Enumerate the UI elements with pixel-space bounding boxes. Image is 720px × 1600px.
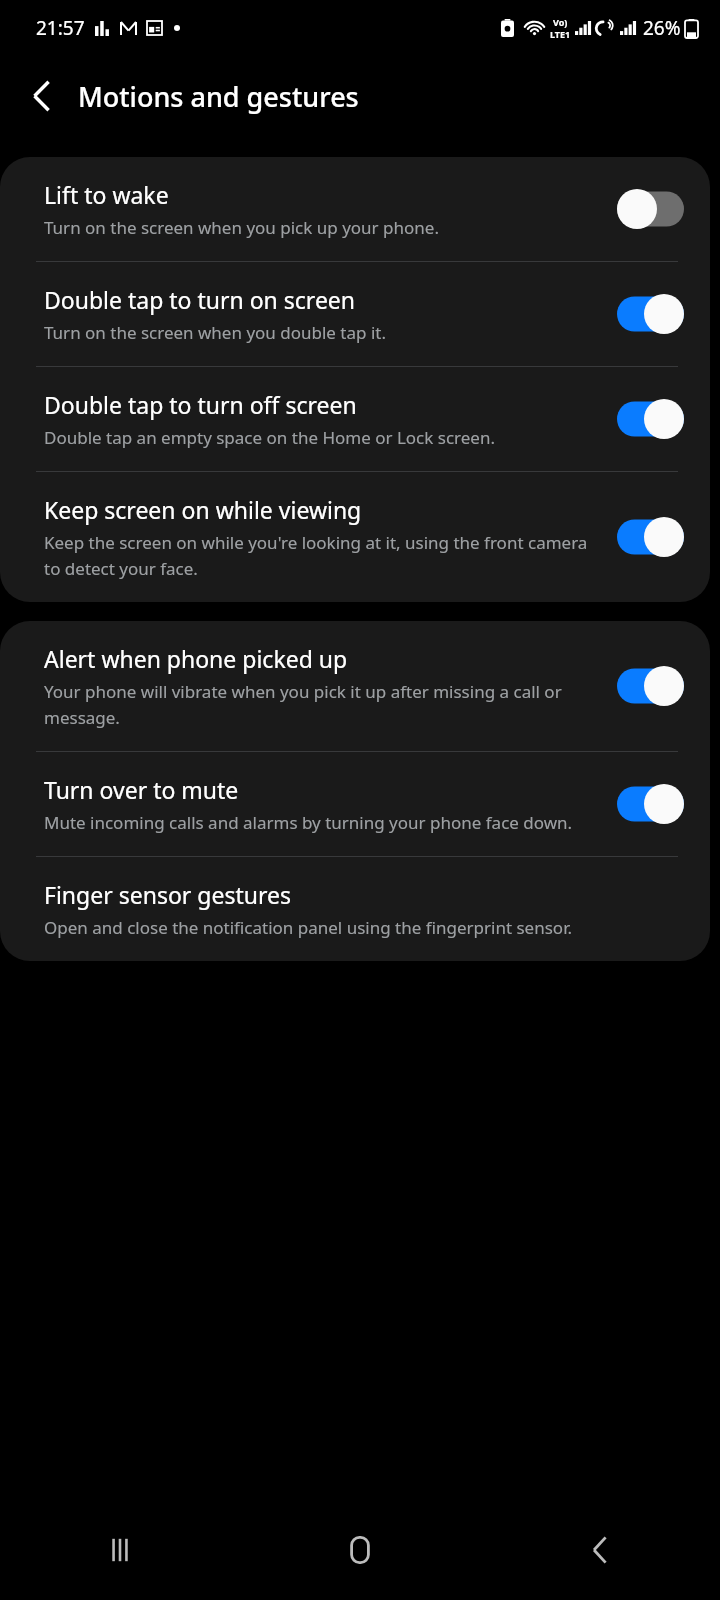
button[interactable]: Home (240, 1500, 480, 1600)
button[interactable]: Keep screen on while viewing (0, 472, 710, 602)
staticText: LTE1 (550, 28, 571, 40)
staticText: Lift to wake (44, 179, 169, 210)
button[interactable]: Lift to wake (0, 157, 710, 261)
button[interactable]: Switch on (614, 782, 686, 826)
staticText: Finger sensor gestures (44, 879, 291, 910)
staticText: Mute incoming calls and alarms by turnin… (44, 811, 573, 834)
button[interactable]: Finger sensor gestures (0, 857, 710, 961)
staticText: Turn on the screen when you double tap i… (44, 321, 386, 344)
button[interactable]: Alert when phone picked up (0, 621, 710, 751)
staticText: Keep the screen on while you're looking … (44, 531, 602, 580)
button[interactable]: Recents (0, 1500, 240, 1600)
staticText: Double tap an empty space on the Home or… (44, 426, 495, 449)
button[interactable]: Navigate up (14, 68, 70, 124)
button[interactable]: Back (480, 1500, 720, 1600)
button[interactable]: Switch on (614, 515, 686, 559)
staticText: Your phone will vibrate when you pick it… (44, 680, 602, 729)
staticText: Open and close the notification panel us… (44, 916, 572, 939)
button[interactable]: Switch on (614, 397, 686, 441)
staticText: Keep screen on while viewing (44, 494, 362, 525)
staticText: 21:57 (36, 15, 85, 41)
button[interactable]: Switch off (614, 187, 686, 231)
staticText: Vo) (553, 16, 568, 28)
staticText: Alert when phone picked up (44, 643, 348, 674)
button[interactable]: Double tap to turn on screen (0, 262, 710, 366)
staticText: Turn over to mute (44, 774, 239, 805)
button[interactable]: Double tap to turn off screen (0, 367, 710, 471)
button[interactable]: Switch on (614, 292, 686, 336)
button[interactable]: Switch on (614, 664, 686, 708)
staticText: Turn on the screen when you pick up your… (44, 216, 439, 239)
staticText: Motions and gestures (78, 78, 359, 115)
staticText: Double tap to turn on screen (44, 284, 356, 315)
staticText: 26% (643, 15, 681, 41)
staticText: Double tap to turn off screen (44, 389, 357, 420)
button[interactable]: Turn over to mute (0, 752, 710, 856)
